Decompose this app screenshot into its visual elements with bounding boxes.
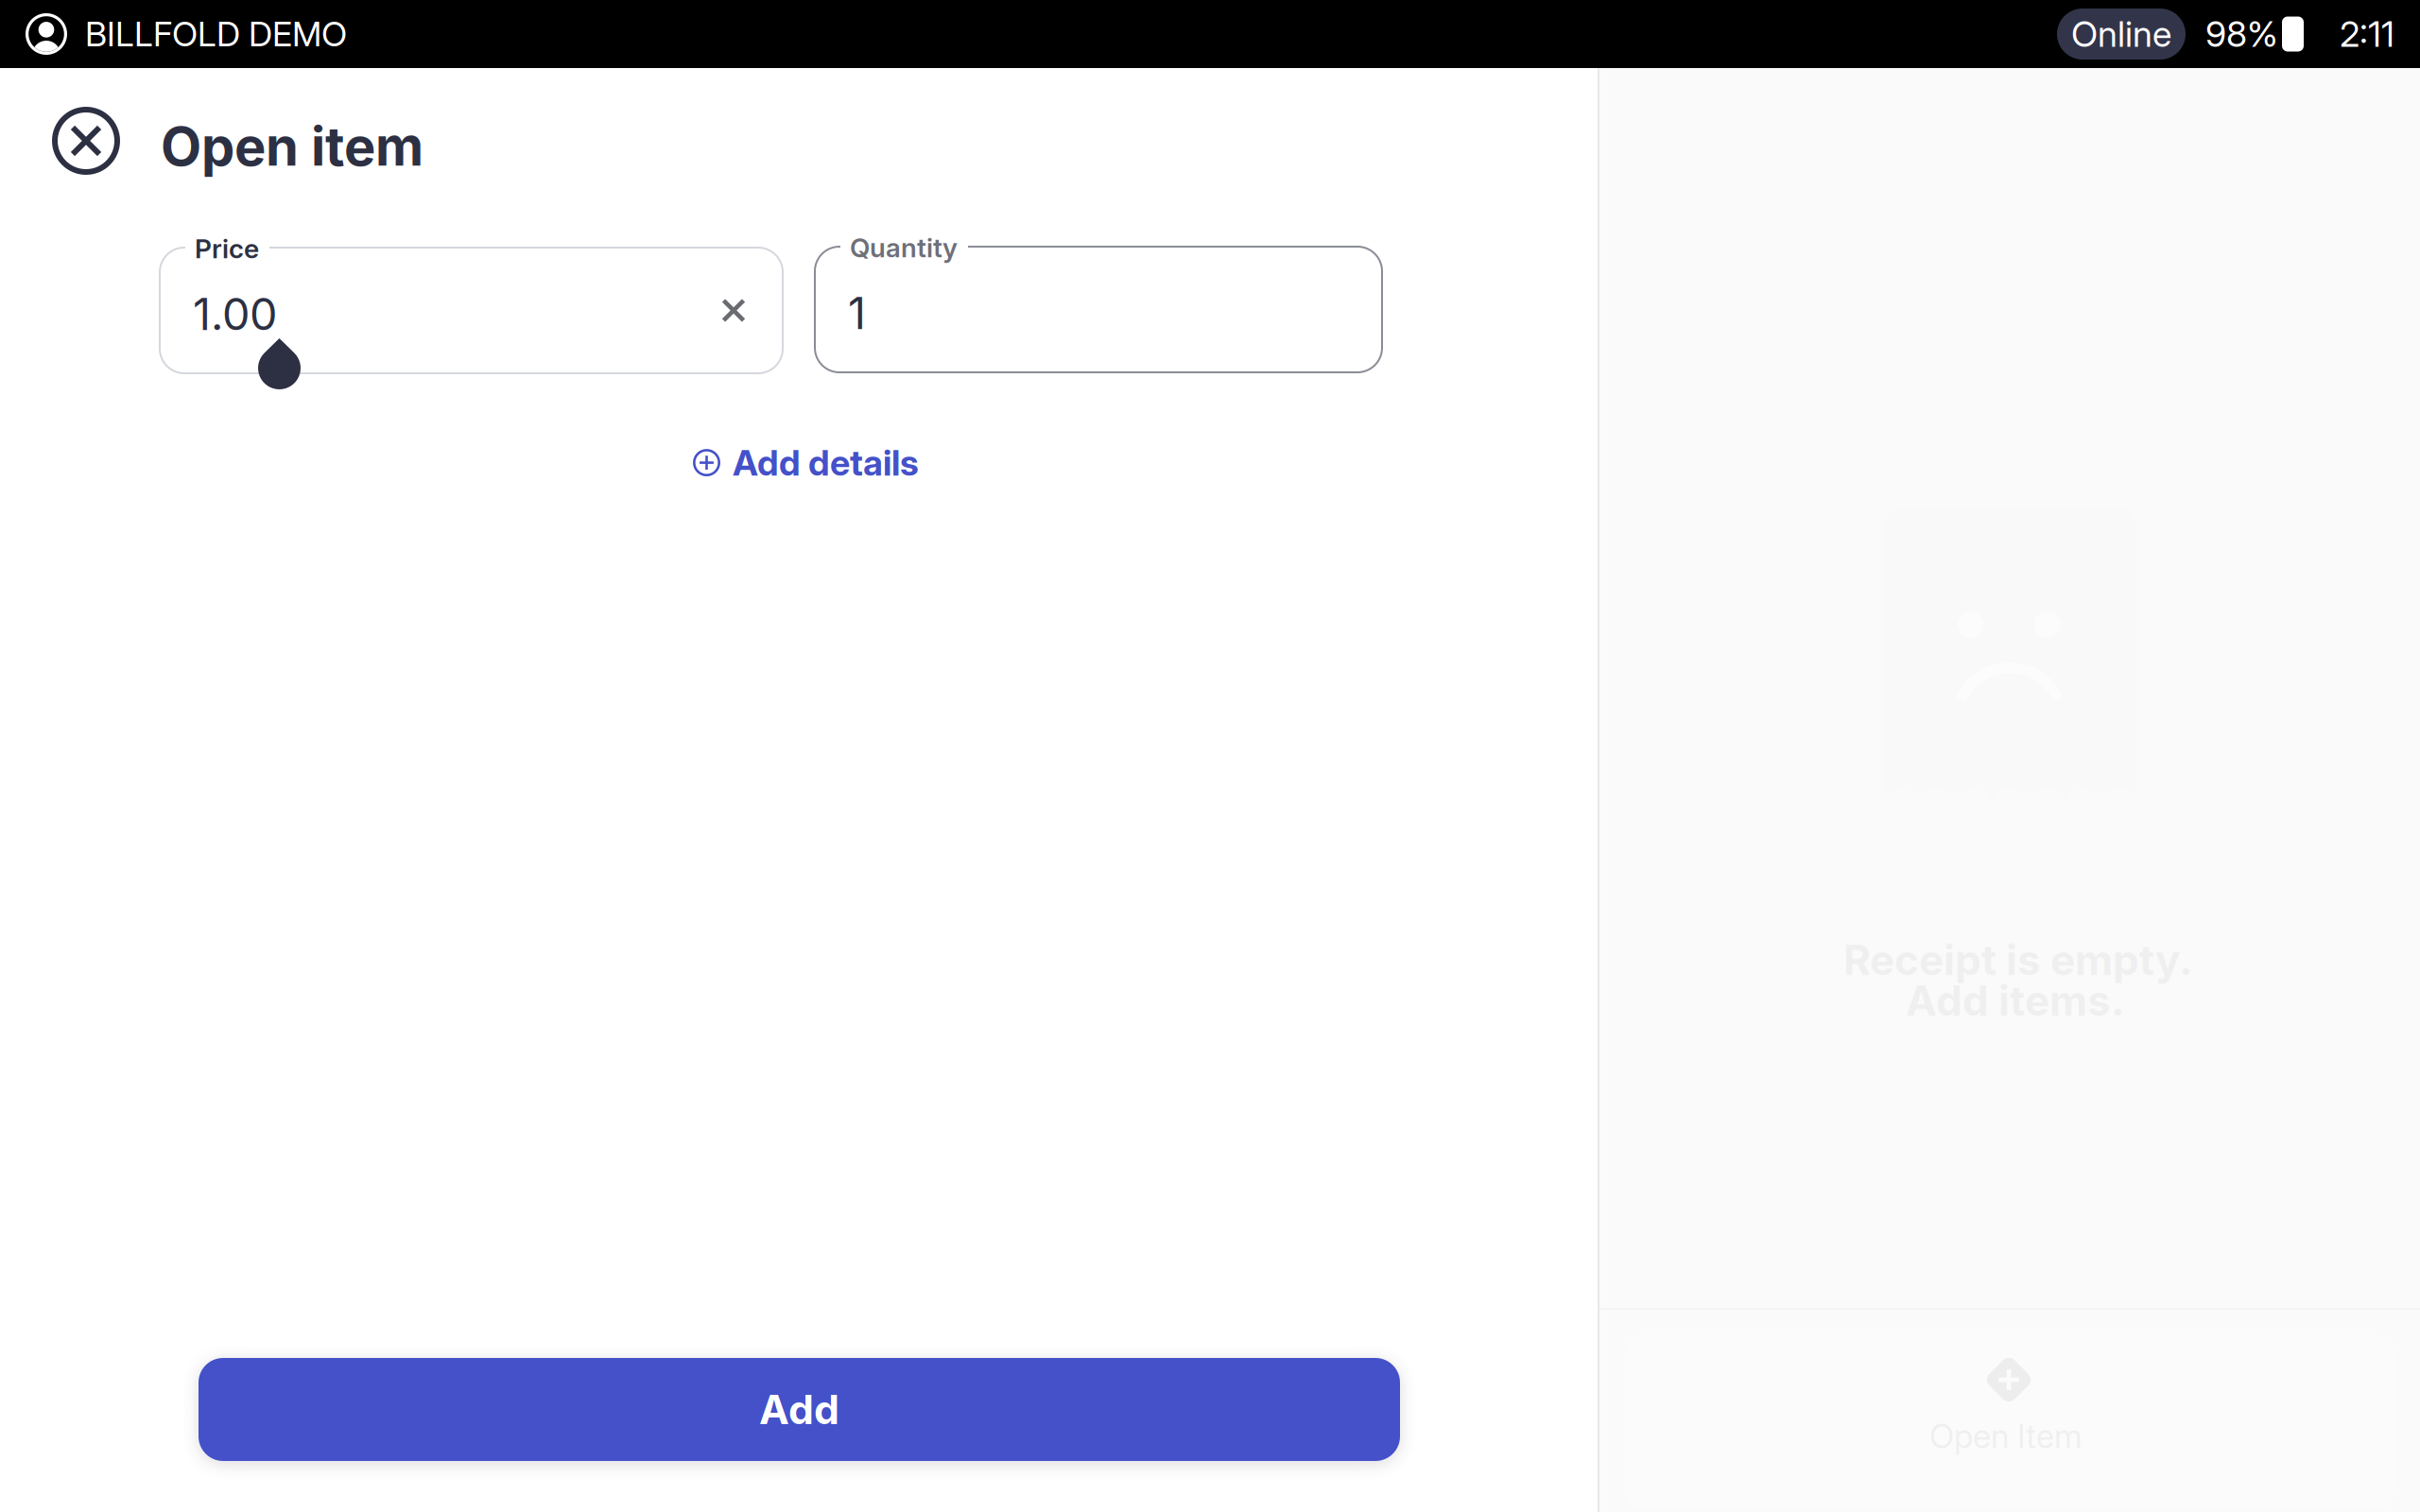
staticText: BILLFOLD DEMO	[85, 13, 347, 55]
button[interactable]: Account — Billfold Demo	[0, 0, 370, 68]
staticText: 2:11	[2340, 13, 2394, 55]
button[interactable]: Quantity, 1	[815, 247, 1382, 372]
staticText: 98%	[2205, 13, 2278, 55]
staticText: Price	[195, 232, 259, 265]
staticText: Add	[759, 1385, 839, 1434]
button[interactable]: Price, 1.00	[160, 248, 783, 373]
button[interactable]: Add details	[674, 426, 938, 499]
button[interactable]: Clear price	[697, 274, 770, 347]
staticText: Add details	[733, 441, 919, 484]
staticText: Quantity	[850, 232, 958, 264]
staticText: 1	[848, 286, 866, 340]
staticText: 1.00	[193, 287, 277, 341]
button[interactable]: Add	[199, 1358, 1400, 1461]
staticText: Receipt is empty.	[1843, 935, 2193, 985]
staticText: Open Item	[1929, 1417, 2083, 1456]
staticText: Add items.	[1906, 975, 2125, 1026]
button[interactable]: Close	[29, 84, 143, 198]
staticText: Online	[2071, 13, 2171, 55]
staticText: Open item	[161, 114, 423, 178]
